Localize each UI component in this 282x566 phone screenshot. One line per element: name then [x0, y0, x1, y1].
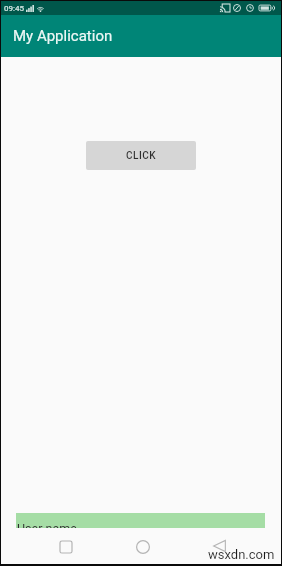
button[interactable]: CLICK — [86, 141, 196, 170]
button[interactable]: Back — [195, 533, 244, 559]
staticText: My Application — [13, 27, 113, 45]
button[interactable]: Home — [118, 534, 167, 560]
staticText: User name — [17, 521, 77, 528]
button[interactable]: Recent apps — [41, 534, 90, 560]
staticText: wsxdn.com — [208, 547, 275, 562]
staticText: CLICK — [126, 150, 157, 162]
staticText: 09:45 — [4, 4, 24, 13]
